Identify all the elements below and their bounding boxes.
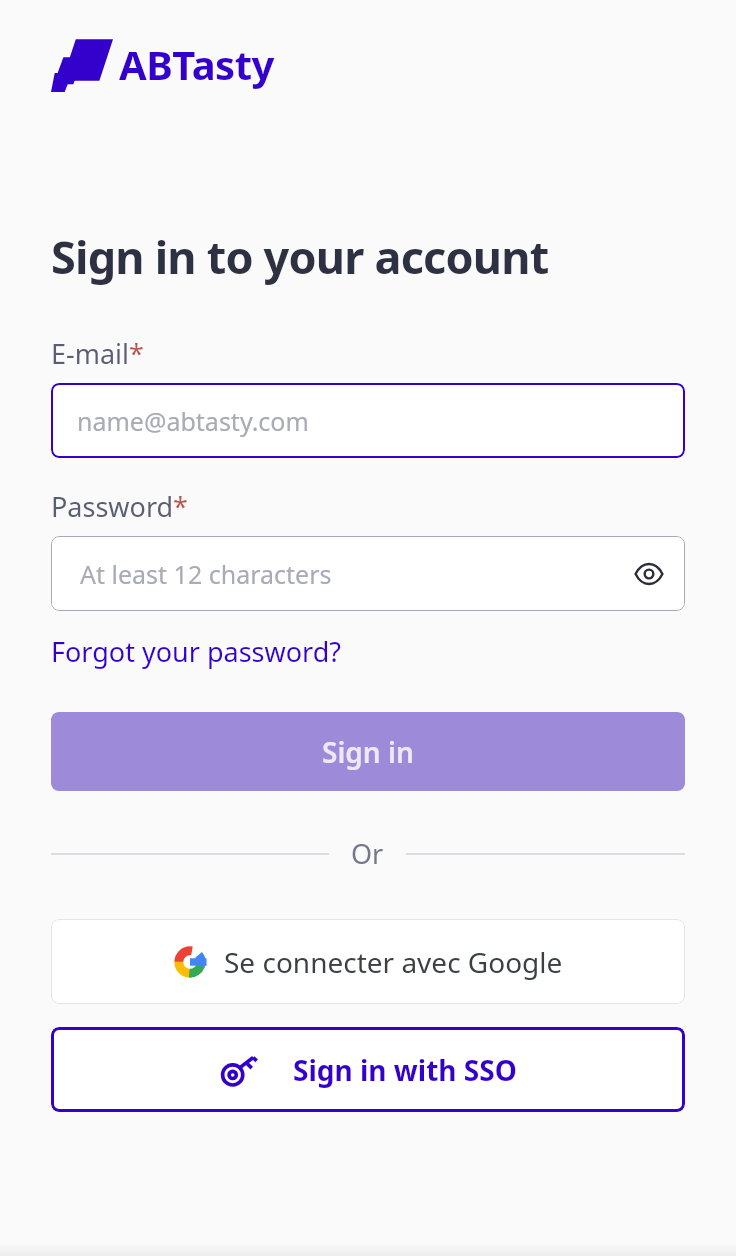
button[interactable]: AB Tasty logo — [51, 36, 274, 92]
button[interactable]: Se connecter avec Google — [51, 919, 685, 1004]
button[interactable]: Forgot your password? — [51, 633, 342, 670]
staticText: Forgot your password? — [51, 633, 342, 670]
button[interactable]: Sign in — [51, 712, 685, 791]
staticText: Password* — [51, 488, 188, 525]
button[interactable]: Sign in with SSO — [51, 1027, 685, 1112]
staticText: Or — [351, 835, 384, 872]
button[interactable]: Show password — [627, 552, 671, 596]
button[interactable]: name@abtasty.com — [51, 383, 685, 458]
staticText: Sign in with SSO — [293, 1051, 517, 1089]
staticText: ABTasty — [119, 37, 274, 91]
staticText: At least 12 characters — [80, 557, 332, 591]
button[interactable]: At least 12 characters — [51, 536, 685, 611]
staticText: Se connecter avec Google — [224, 943, 563, 981]
staticText: Sign in — [322, 733, 414, 771]
staticText: name@abtasty.com — [77, 404, 309, 438]
staticText: Sign in to your account — [51, 226, 549, 287]
staticText: E-mail* — [51, 335, 144, 372]
